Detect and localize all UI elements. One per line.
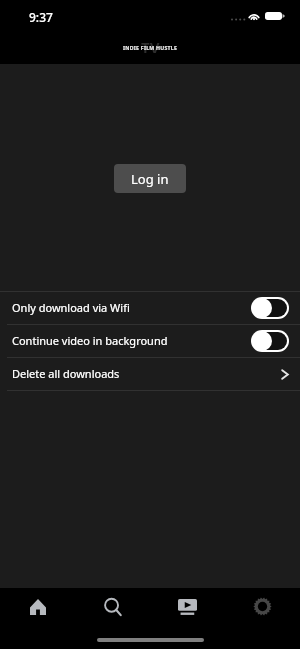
- staticText: Log in: [131, 170, 169, 188]
- staticText: 9:37: [29, 9, 53, 25]
- button[interactable]: Settings: [225, 588, 300, 625]
- button[interactable]: Delete all downloads: [0, 358, 300, 390]
- staticText: Only download via Wifi: [12, 300, 130, 315]
- button[interactable]: Continue video in background: [0, 325, 300, 357]
- button[interactable]: Home: [0, 588, 75, 625]
- button[interactable]: Search: [75, 588, 150, 625]
- button[interactable]: Watch: [150, 588, 225, 625]
- button[interactable]: Only download via Wifi: [0, 292, 300, 324]
- button[interactable]: Log in: [114, 164, 186, 193]
- button[interactable]: Toggle: [251, 330, 289, 352]
- staticText: Delete all downloads: [12, 366, 120, 381]
- staticText: INDIE FILM HUSTLE: [123, 44, 178, 51]
- staticText: TV: [141, 37, 160, 57]
- staticText: Continue video in background: [12, 333, 168, 348]
- button[interactable]: Toggle: [251, 297, 289, 319]
